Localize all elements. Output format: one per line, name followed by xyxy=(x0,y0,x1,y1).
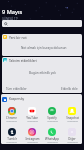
staticText: Instagram xyxy=(25,137,40,141)
staticText: Uygulama xyxy=(67,120,78,123)
staticText: Tumblr xyxy=(7,137,17,141)
button[interactable]: Chrome xyxy=(1,107,22,123)
staticText: Spotify xyxy=(47,116,57,120)
staticText: YouTube xyxy=(26,116,38,120)
button[interactable]: Kaspersky xyxy=(1,94,82,104)
staticText: Yeni bir not xyxy=(9,35,27,39)
staticText: Bugün etkinlik yok xyxy=(29,71,56,75)
staticText: GÜNEŞLİ 17° xyxy=(2,17,19,21)
button[interactable]: YouTube xyxy=(22,107,42,123)
button[interactable]: Etkinlik ekle xyxy=(61,87,78,91)
button[interactable]: Spotify xyxy=(42,107,62,123)
button[interactable]: Search xyxy=(2,20,82,27)
staticText: Chrome xyxy=(6,116,17,120)
staticText: Takvim etkinlikleri xyxy=(9,58,37,62)
staticText: Uygulama xyxy=(67,141,78,144)
staticText: Kaspersky xyxy=(9,97,25,101)
staticText: Uygulama xyxy=(6,120,17,123)
button[interactable]: Diğer xyxy=(62,128,82,144)
button[interactable]: Takvim etkinlikleri xyxy=(2,57,82,93)
staticText: Uygulama xyxy=(6,141,17,144)
staticText: Uygulama xyxy=(27,120,38,123)
staticText: WhatsApp xyxy=(45,137,59,141)
button[interactable]: Snapchat xyxy=(62,107,82,123)
staticText: Not almak için buraya dokunun xyxy=(21,46,67,50)
staticText: Snapchat xyxy=(66,116,79,120)
button[interactable]: WhatsApp xyxy=(42,128,62,144)
button[interactable]: Tüm etkinlikler xyxy=(6,87,27,91)
staticText: Diğer xyxy=(68,137,76,141)
staticText: Uygulama xyxy=(47,141,58,144)
button[interactable]: Yeni bir not xyxy=(2,34,82,56)
button[interactable]: Tumblr xyxy=(1,128,22,144)
staticText: Uygulama xyxy=(47,120,58,123)
staticText: Uygulama xyxy=(27,141,38,144)
staticText: 9 Mayıs xyxy=(2,8,23,16)
button[interactable]: Instagram xyxy=(22,128,42,144)
